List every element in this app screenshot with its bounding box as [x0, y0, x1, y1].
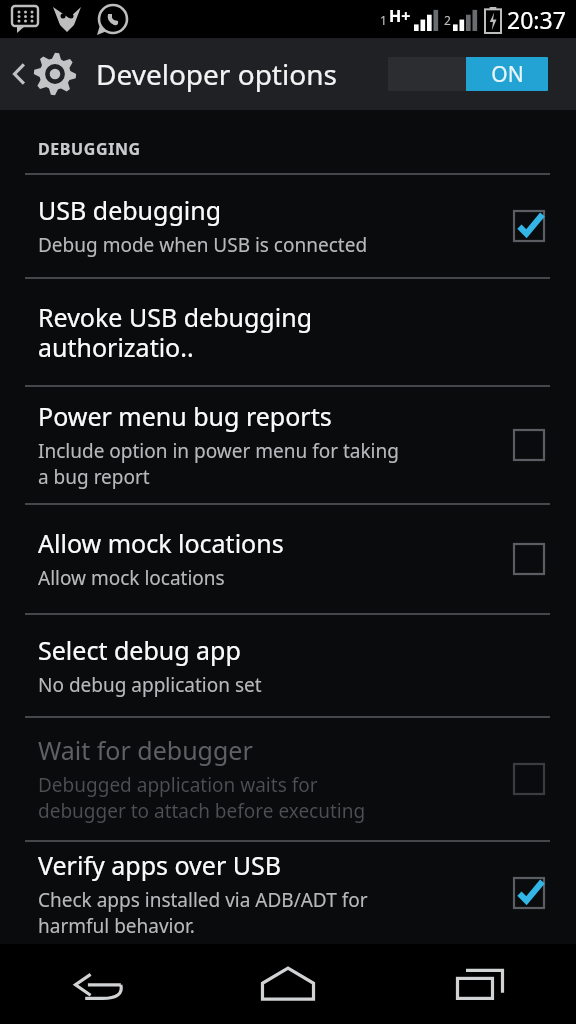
button[interactable]: Back: [0, 944, 192, 1024]
staticText: Allow mock locations: [38, 565, 225, 591]
staticText: Debugged application waits for debugger …: [38, 772, 366, 824]
button[interactable]: Toggle checkbox: [513, 877, 545, 909]
staticText: 2: [444, 12, 451, 28]
staticText: USB debugging: [38, 193, 222, 227]
staticText: Verify apps over USB: [38, 848, 281, 882]
staticText: DEBUGGING: [38, 138, 141, 160]
button[interactable]: Select debug app: [0, 615, 576, 715]
staticText: Select debug app: [38, 633, 241, 667]
button[interactable]: USB debugging: [0, 175, 576, 276]
button[interactable]: Toggle checkbox: [513, 543, 545, 575]
staticText: Power menu bug reports: [38, 399, 332, 433]
staticText: Wait for debugger: [38, 733, 253, 767]
button[interactable]: Toggle checkbox: [513, 210, 545, 242]
staticText: No debug application set: [38, 672, 262, 698]
staticText: 20:37: [507, 4, 566, 35]
staticText: Developer options: [96, 55, 337, 93]
button[interactable]: Wait for debugger: [0, 718, 576, 839]
button[interactable]: Home: [192, 944, 384, 1024]
staticText: Debug mode when USB is connected: [38, 232, 368, 258]
staticText: ON: [491, 60, 524, 89]
staticText: Allow mock locations: [38, 526, 284, 560]
button[interactable]: Up, Settings: [6, 43, 86, 105]
button[interactable]: Verify apps over USB: [0, 842, 576, 944]
staticText: H+: [389, 5, 411, 27]
staticText: 1: [380, 12, 387, 28]
button[interactable]: Allow mock locations: [0, 505, 576, 612]
button[interactable]: Toggle checkbox: [513, 763, 545, 795]
button[interactable]: Revoke USB debugging authorizatio..: [0, 279, 576, 384]
button[interactable]: Power menu bug reports: [0, 387, 576, 502]
button[interactable]: Toggle checkbox: [513, 429, 545, 461]
staticText: Include option in power menu for taking …: [38, 438, 399, 490]
button[interactable]: Developer options on: [388, 57, 548, 91]
button[interactable]: Recent apps: [384, 944, 576, 1024]
staticText: Check apps installed via ADB/ADT for har…: [38, 887, 368, 939]
staticText: Revoke USB debugging authorizatio..: [38, 300, 471, 364]
